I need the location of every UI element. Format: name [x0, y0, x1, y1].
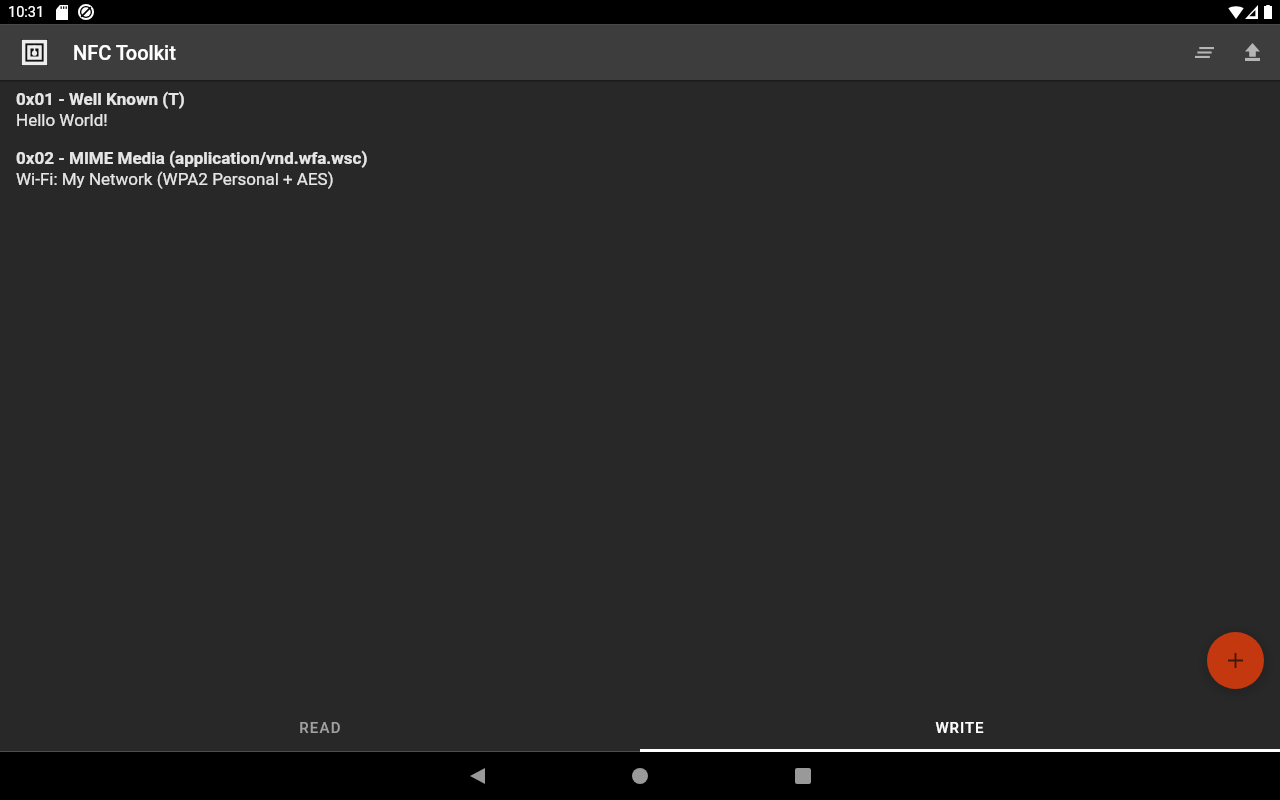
staticText: 10:31: [8, 4, 45, 21]
button[interactable]: Home: [616, 752, 664, 800]
staticText: 0x02 - MIME Media (application/vnd.wfa.w…: [16, 148, 368, 168]
button[interactable]: Back: [453, 752, 501, 800]
staticText: READ: [299, 719, 342, 737]
button[interactable]: Write to tag: [1228, 28, 1276, 76]
button[interactable]: Recent apps: [779, 752, 827, 800]
button[interactable]: WRITE: [640, 704, 1280, 752]
staticText: Hello World!: [16, 110, 108, 130]
staticText: 0x01 - Well Known (T): [16, 89, 185, 109]
staticText: NFC Toolkit: [73, 41, 176, 64]
button[interactable]: Sort records: [1180, 28, 1228, 76]
button[interactable]: Add record: [1207, 632, 1264, 689]
button[interactable]: READ: [0, 704, 640, 752]
staticText: WRITE: [935, 719, 985, 737]
staticText: Wi-Fi: My Network (WPA2 Personal + AES): [16, 169, 334, 189]
